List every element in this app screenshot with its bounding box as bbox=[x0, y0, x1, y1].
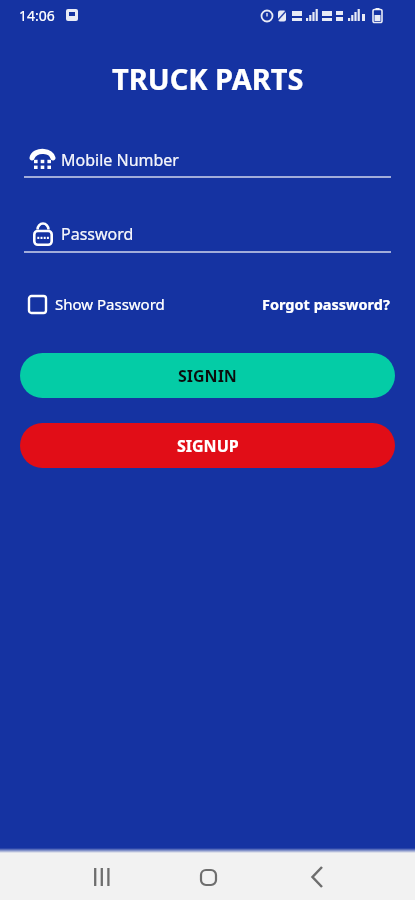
staticText: Password bbox=[61, 223, 134, 245]
staticText: 14:06 bbox=[19, 6, 55, 25]
button[interactable]: Password bbox=[24, 222, 391, 253]
staticText: TRUCK PARTS bbox=[112, 59, 304, 98]
staticText: SIGNIN bbox=[178, 365, 237, 387]
staticText: Mobile Number bbox=[61, 149, 179, 171]
staticText: SIGNUP bbox=[177, 435, 239, 457]
button[interactable]: SIGNIN bbox=[20, 353, 395, 398]
button[interactable]: Mobile Number bbox=[24, 148, 391, 178]
button[interactable]: Forgot password? bbox=[262, 294, 390, 314]
button[interactable] bbox=[82, 857, 122, 897]
button[interactable] bbox=[188, 857, 228, 897]
button[interactable] bbox=[297, 857, 337, 897]
button[interactable]: Show Password bbox=[28, 294, 165, 314]
button[interactable]: SIGNUP bbox=[20, 423, 395, 468]
staticText: Show Password bbox=[55, 294, 165, 314]
